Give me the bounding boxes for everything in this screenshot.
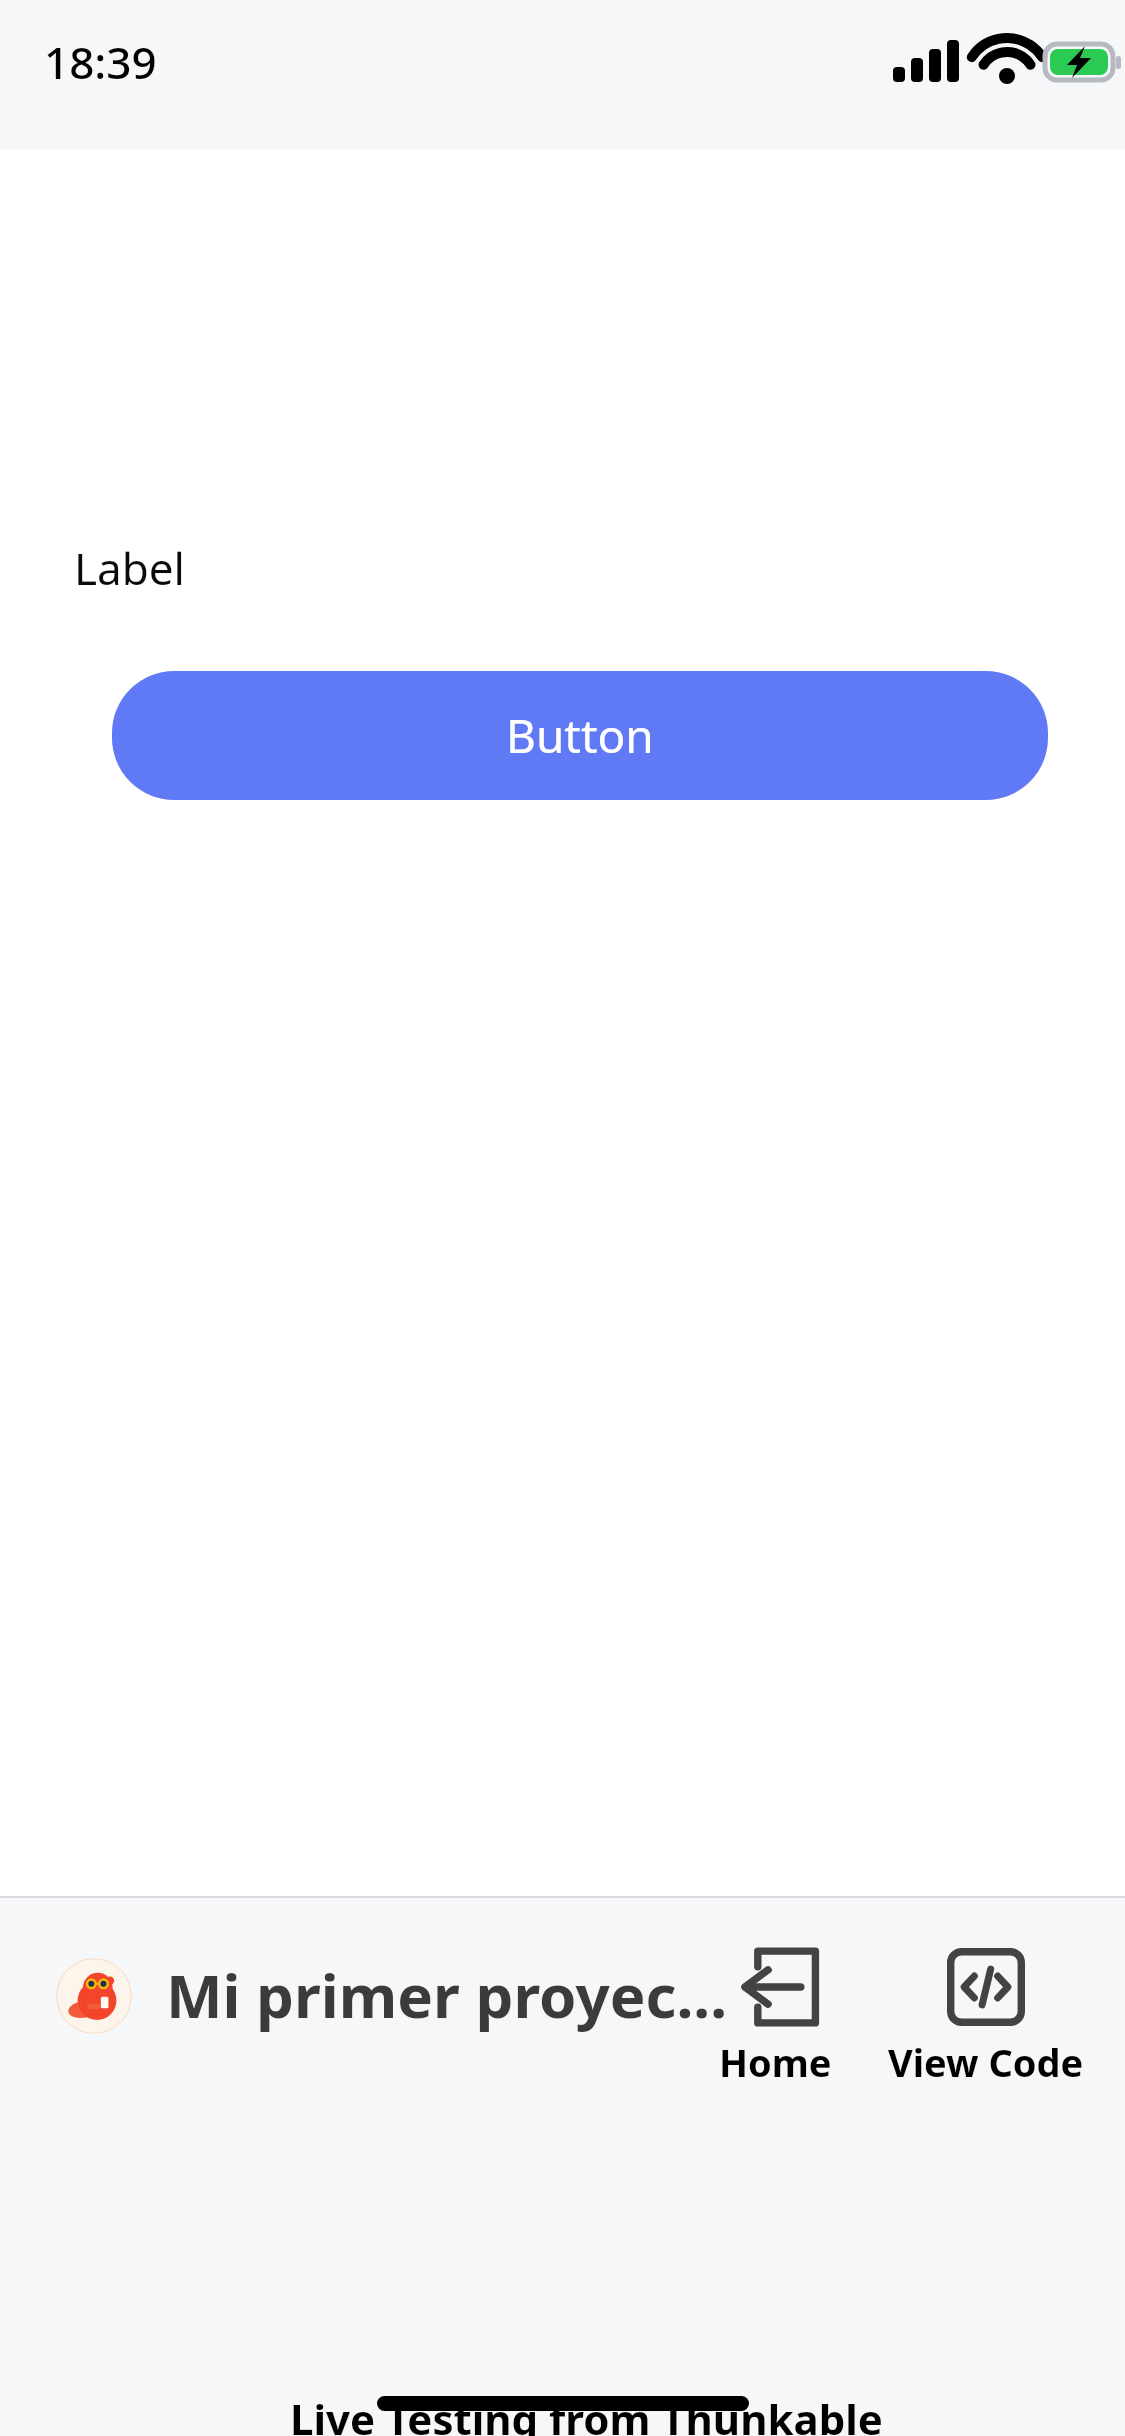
staticText: Button [506,704,654,767]
button[interactable]: Mi primer proyec... [166,1954,727,2036]
staticText: Home [719,2036,832,2088]
staticText: 18:39 [44,32,157,92]
staticText: View Code [888,2036,1084,2088]
staticText: Live Testing from Thunkable [290,2390,883,2436]
staticText: Label [74,538,185,598]
button[interactable]: Home [700,1948,850,2088]
button[interactable]: View Code [862,1948,1110,2088]
button[interactable]: Button [112,671,1048,800]
